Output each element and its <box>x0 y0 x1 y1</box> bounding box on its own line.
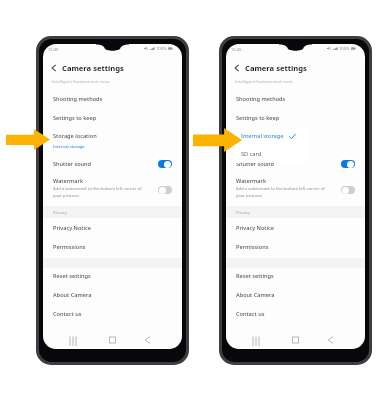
staticText: Reset settings <box>236 272 274 280</box>
button[interactable]: Watermark <box>226 174 365 188</box>
staticText: Watermark <box>236 177 267 185</box>
button[interactable]: Contact us <box>226 307 365 321</box>
staticText: Contact us <box>236 310 265 318</box>
button[interactable]: SD card <box>230 145 308 163</box>
button[interactable]: About Camera <box>43 288 182 302</box>
button[interactable]: Toggle <box>341 186 355 194</box>
button[interactable]: Toggle <box>158 186 172 194</box>
button[interactable]: Back <box>233 64 241 72</box>
button[interactable]: Reset settings <box>43 269 182 283</box>
staticText: Privacy <box>53 210 67 216</box>
staticText: Camera settings <box>62 63 124 73</box>
staticText: Shooting methods <box>53 95 103 103</box>
button[interactable]: Permissions <box>43 240 182 254</box>
button[interactable]: Internal storage <box>230 127 308 145</box>
staticText: Privacy Notice <box>53 224 91 232</box>
button[interactable]: Shooting methods <box>226 92 365 106</box>
staticText: Camera settings <box>245 63 307 73</box>
staticText: Privacy <box>236 210 250 216</box>
button[interactable]: Back <box>325 334 336 348</box>
staticText: SD card <box>241 150 262 158</box>
staticText: Settings to keep <box>236 114 280 122</box>
staticText: About Camera <box>236 291 275 299</box>
button[interactable]: About Camera <box>226 288 365 302</box>
staticText: Intelligent features and more <box>52 79 110 85</box>
button[interactable]: Recents <box>68 334 79 348</box>
staticText: Settings to keep <box>53 114 97 122</box>
staticText: Permissions <box>236 243 269 251</box>
staticText: Shutter sound <box>53 160 92 168</box>
button[interactable]: Storage location <box>43 129 182 143</box>
staticText: Intelligent features and more <box>235 79 293 85</box>
button[interactable]: Home <box>290 334 301 348</box>
button[interactable]: Back <box>50 64 58 72</box>
button[interactable]: Settings to keep <box>226 111 365 125</box>
staticText: Storage location <box>53 132 97 140</box>
staticText: Permissions <box>53 243 86 251</box>
button[interactable]: Toggle <box>158 160 172 168</box>
staticText: Internal storage <box>241 132 284 140</box>
button[interactable]: Shutter sound <box>226 157 365 171</box>
staticText: Storage location <box>236 132 280 140</box>
staticText: Contact us <box>53 310 82 318</box>
button[interactable]: Contact us <box>43 307 182 321</box>
button[interactable]: Toggle <box>341 160 355 168</box>
staticText: 12:45 <box>231 47 242 53</box>
staticText: About Camera <box>53 291 92 299</box>
staticText: Shooting methods <box>236 95 286 103</box>
button[interactable]: Shutter sound <box>43 157 182 171</box>
staticText: Add a watermark to the bottom left corne… <box>53 186 142 198</box>
staticText: 12:45 <box>48 47 59 53</box>
button[interactable]: Permissions <box>226 240 365 254</box>
staticText: 100% <box>156 46 167 51</box>
button[interactable]: Back <box>142 334 153 348</box>
button[interactable]: Recents <box>251 334 262 348</box>
staticText: Watermark <box>53 177 84 185</box>
button[interactable]: Shooting methods <box>43 92 182 106</box>
staticText: Reset settings <box>53 272 91 280</box>
staticText: Internal storage <box>53 144 85 150</box>
button[interactable]: Reset settings <box>226 269 365 283</box>
button[interactable]: Privacy Notice <box>43 221 182 235</box>
button[interactable]: Storage location <box>226 129 365 143</box>
staticText: Add a watermark to the bottom left corne… <box>236 186 325 198</box>
staticText: Shutter sound <box>236 160 275 168</box>
button[interactable]: Privacy Notice <box>226 221 365 235</box>
staticText: Privacy Notice <box>236 224 274 232</box>
button[interactable]: Watermark <box>43 174 182 188</box>
button[interactable]: Home <box>107 334 118 348</box>
button[interactable]: Settings to keep <box>43 111 182 125</box>
staticText: 100% <box>339 46 350 51</box>
